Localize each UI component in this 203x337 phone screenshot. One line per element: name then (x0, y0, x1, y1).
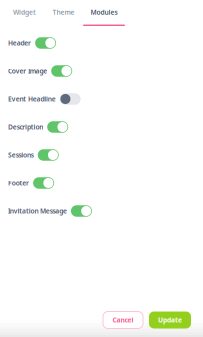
staticText: Event Headline (8, 95, 56, 103)
staticText: Widget (13, 8, 36, 17)
staticText: Header (8, 39, 31, 47)
staticText: Theme (52, 8, 74, 17)
staticText: Description (8, 123, 43, 131)
staticText: Modules (90, 8, 117, 17)
button[interactable]: Header (0, 29, 203, 57)
button[interactable]: Footer (0, 169, 203, 197)
staticText: Update (158, 316, 182, 324)
staticText: Cancel (112, 316, 133, 324)
button[interactable]: Invitation Message (0, 197, 203, 225)
staticText: Cover Image (8, 67, 47, 75)
button[interactable]: Event Headline (0, 85, 203, 113)
button[interactable]: Widget (5, 0, 44, 26)
button[interactable]: Theme (44, 0, 83, 26)
button[interactable]: Modules (83, 0, 125, 26)
button[interactable]: Cover Image (0, 57, 203, 85)
button[interactable]: Description (0, 113, 203, 141)
button[interactable]: Sessions (0, 141, 203, 169)
staticText: Sessions (8, 151, 34, 159)
staticText: Footer (8, 179, 29, 187)
button[interactable]: Update (149, 311, 191, 328)
staticText: Invitation Message (8, 207, 67, 215)
button[interactable]: Cancel (103, 311, 143, 328)
